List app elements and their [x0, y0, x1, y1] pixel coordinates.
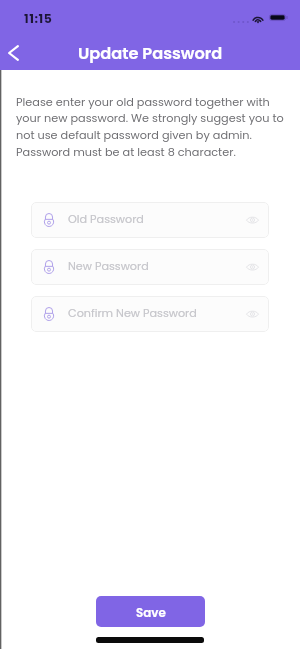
- button[interactable]: Show password: [243, 258, 261, 276]
- staticText: Old Password: [68, 211, 144, 227]
- button[interactable]: Save: [96, 596, 205, 627]
- staticText: New Password: [68, 258, 149, 274]
- button[interactable]: Show password: [243, 211, 261, 229]
- button[interactable]: Confirm New Password: [31, 296, 269, 332]
- staticText: Please enter your old password together …: [16, 94, 284, 160]
- button[interactable]: Show password: [243, 305, 261, 323]
- staticText: Save: [136, 605, 166, 622]
- staticText: Confirm New Password: [68, 305, 197, 321]
- button[interactable]: Back: [0, 30, 26, 70]
- button[interactable]: New Password: [31, 249, 269, 285]
- staticText: 11:15: [24, 10, 53, 27]
- button[interactable]: Old Password: [31, 202, 269, 238]
- staticText: Update Password: [78, 42, 223, 65]
